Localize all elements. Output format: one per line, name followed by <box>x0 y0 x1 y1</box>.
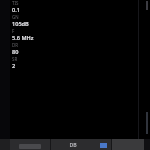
button[interactable]: Active mode <box>95 139 111 150</box>
button[interactable]: GN <box>12 14 136 28</box>
button[interactable]: DB <box>51 139 95 150</box>
button[interactable]: Preset <box>10 139 50 150</box>
button[interactable]: F <box>12 28 136 42</box>
staticText: 5.6 MHz <box>12 34 34 42</box>
staticText: 0.1 <box>12 6 20 14</box>
staticText: SR <box>12 56 18 62</box>
staticText: DB <box>69 141 77 148</box>
staticText: F <box>12 28 15 34</box>
staticText: DR <box>12 42 18 48</box>
button[interactable]: SR <box>12 56 136 70</box>
staticText: 105dB <box>12 20 29 28</box>
button[interactable]: DR <box>12 42 136 56</box>
staticText: TIS <box>12 0 19 6</box>
staticText: GN <box>12 14 19 20</box>
button[interactable]: TIS <box>12 0 136 14</box>
staticText: 80 <box>12 48 19 56</box>
staticText: 2 <box>12 62 16 70</box>
